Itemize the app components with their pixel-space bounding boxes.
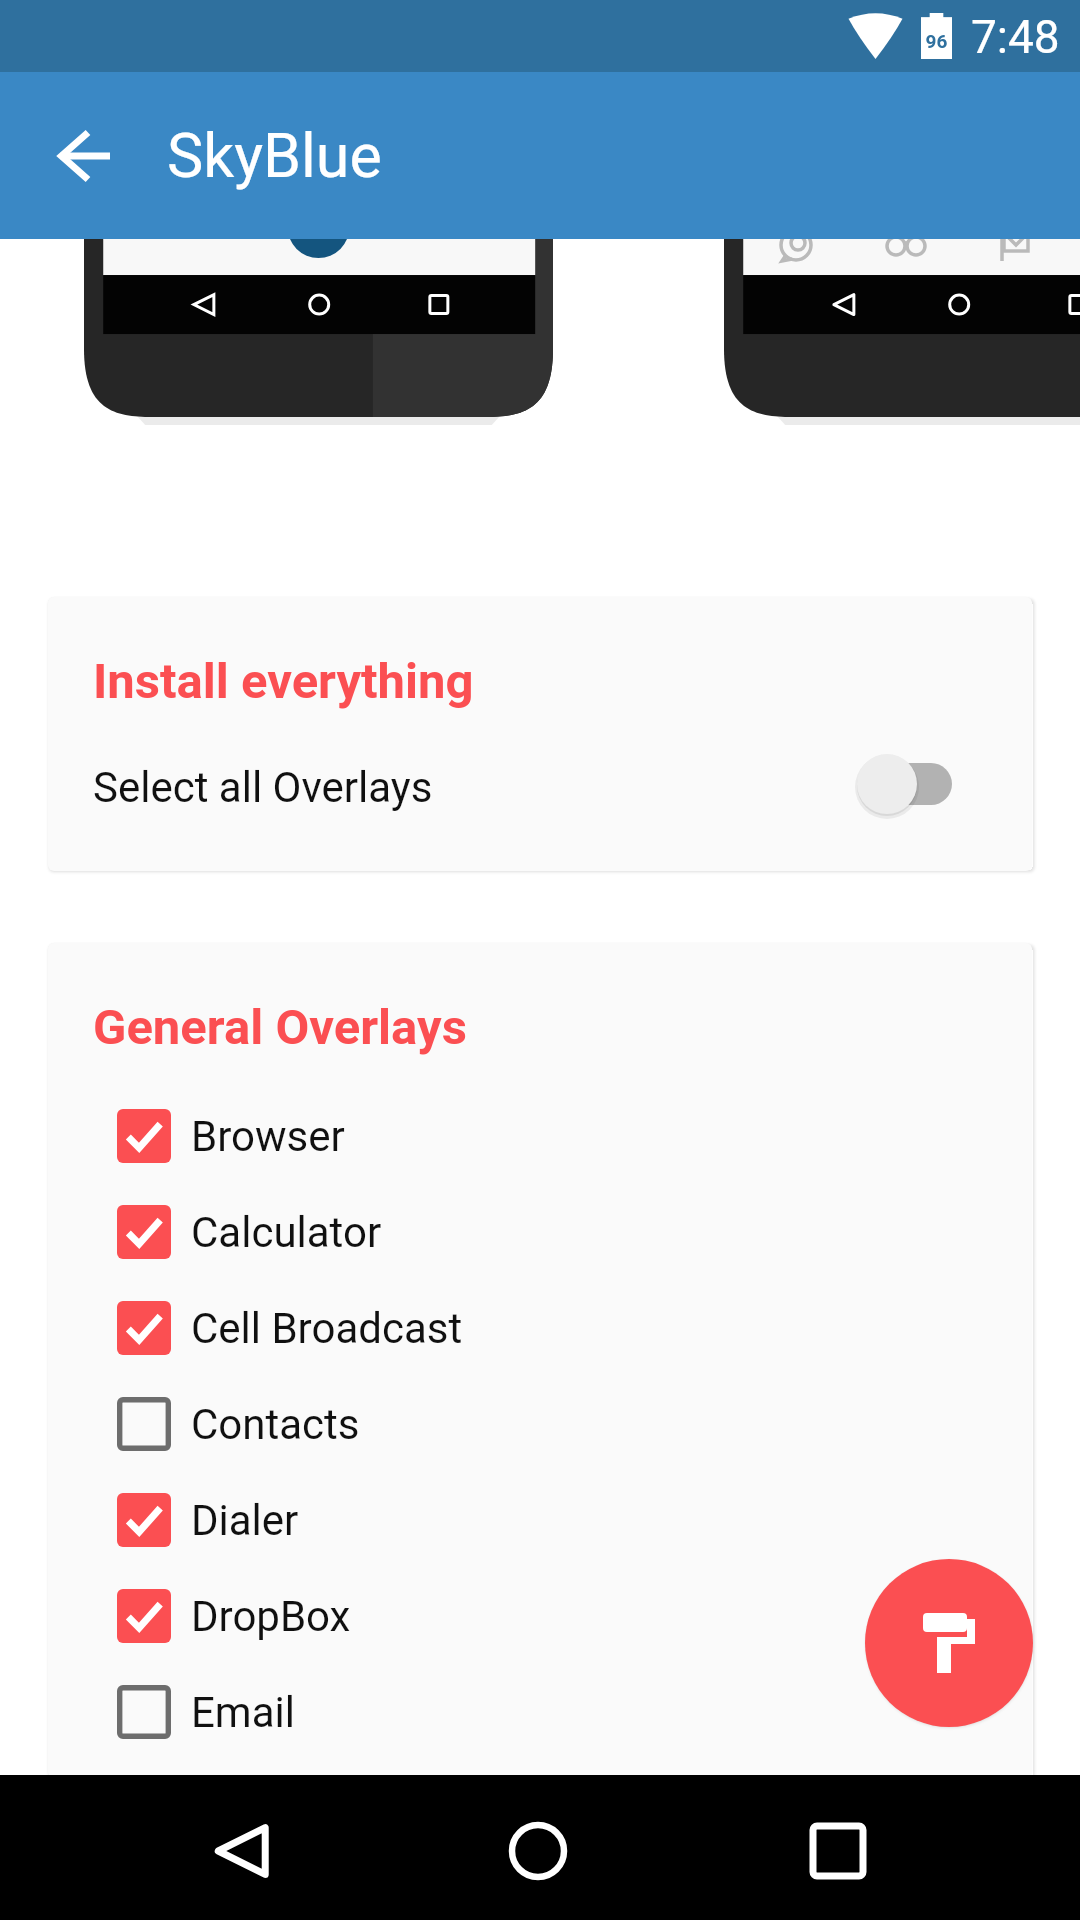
button[interactable]: Back <box>36 108 132 204</box>
staticText: SkyBlue <box>167 120 382 191</box>
staticText: 7:48 <box>971 10 1060 64</box>
staticText: Select all Overlays <box>93 763 433 812</box>
staticText: 96 <box>921 30 952 52</box>
staticText: Browser <box>191 1112 345 1161</box>
button[interactable]: Apply overlays <box>865 1559 1033 1727</box>
button[interactable]: Recent apps <box>768 1781 908 1920</box>
button[interactable]: Dialer <box>48 1472 1032 1568</box>
staticText: Email <box>191 1688 295 1737</box>
button[interactable]: Home <box>468 1781 608 1920</box>
staticText: Calculator <box>191 1208 382 1257</box>
button[interactable]: Contacts <box>48 1376 1032 1472</box>
button[interactable]: Email <box>48 1664 1032 1760</box>
button[interactable]: Select all Overlays <box>48 737 1032 837</box>
button[interactable]: Browser <box>48 1088 1032 1184</box>
staticText: Contacts <box>191 1400 360 1449</box>
staticText: Dialer <box>191 1496 299 1545</box>
staticText: Cell Broadcast <box>191 1304 463 1353</box>
button[interactable]: DropBox <box>48 1568 1032 1664</box>
staticText: Install everything <box>93 653 474 710</box>
staticText: DropBox <box>191 1592 351 1641</box>
staticText: General Overlays <box>93 999 467 1056</box>
button[interactable]: Calculator <box>48 1184 1032 1280</box>
button[interactable]: Back <box>172 1781 312 1920</box>
button[interactable]: Cell Broadcast <box>48 1280 1032 1376</box>
